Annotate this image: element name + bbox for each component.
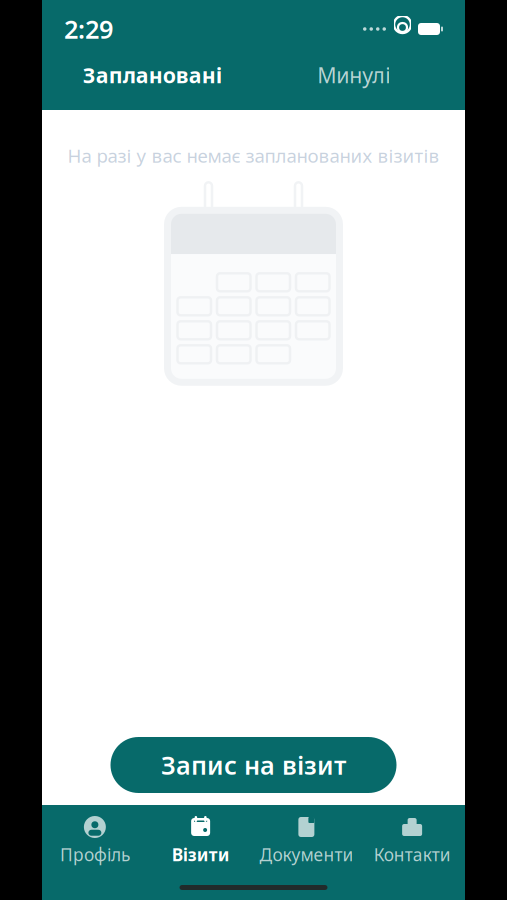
staticText: Минулі: [317, 61, 391, 89]
staticText: 2:29: [64, 12, 113, 46]
button[interactable]: Документи: [253, 805, 359, 874]
button[interactable]: Візити: [148, 805, 254, 874]
staticText: Контакти: [374, 843, 451, 866]
staticText: Візити: [172, 843, 230, 866]
staticText: Документи: [259, 843, 353, 866]
button[interactable]: Минулі: [253, 52, 455, 98]
staticText: Заплановані: [83, 61, 223, 89]
button[interactable]: Контакти: [359, 805, 465, 874]
button[interactable]: Запис на візит: [110, 737, 396, 793]
staticText: На разі у вас немає запланованих візитів: [67, 143, 439, 168]
button[interactable]: Профіль: [42, 805, 148, 874]
staticText: Профіль: [60, 843, 130, 866]
button[interactable]: Заплановані: [52, 52, 253, 98]
staticText: Запис на візит: [161, 748, 346, 782]
